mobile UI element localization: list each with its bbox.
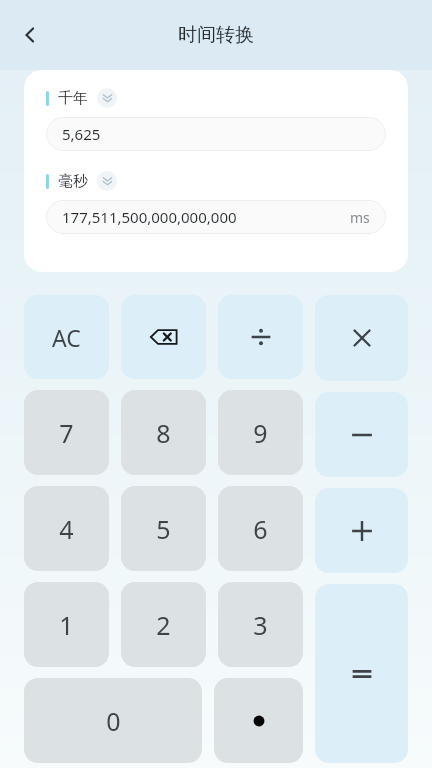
button[interactable]: Equals — [315, 584, 408, 763]
staticText: 6 — [253, 512, 268, 546]
staticText: 4 — [59, 512, 74, 546]
button[interactable]: Minus — [315, 392, 408, 477]
button[interactable]: 6 — [218, 486, 303, 571]
staticText: 5,625 — [62, 124, 370, 144]
staticText: 2 — [156, 608, 171, 642]
button[interactable]: 7 — [24, 390, 109, 475]
staticText: 1 — [59, 608, 74, 642]
button[interactable]: Multiply — [315, 295, 408, 381]
button[interactable]: Divide — [218, 295, 303, 379]
button[interactable]: 8 — [121, 390, 206, 475]
button[interactable]: Plus — [315, 488, 408, 573]
staticText: 8 — [156, 416, 171, 450]
staticText: AC — [52, 322, 81, 353]
staticText: ms — [350, 208, 370, 227]
staticText: 千年 — [58, 89, 88, 108]
staticText: 5 — [156, 512, 171, 546]
button[interactable]: All clear — [24, 295, 109, 379]
button[interactable]: 5,625 — [46, 117, 386, 151]
staticText: 177,511,500,000,000,000 — [62, 207, 350, 227]
button[interactable]: Change unit — [97, 88, 117, 108]
button[interactable]: 0 — [24, 678, 202, 763]
button[interactable]: 3 — [218, 582, 303, 667]
button[interactable]: 1 — [24, 582, 109, 667]
button[interactable]: 177,511,500,000,000,000 — [46, 200, 386, 234]
button[interactable]: 9 — [218, 390, 303, 475]
staticText: 3 — [253, 608, 268, 642]
button[interactable]: Back — [8, 13, 52, 57]
button[interactable]: 2 — [121, 582, 206, 667]
button[interactable]: 4 — [24, 486, 109, 571]
staticText: 9 — [253, 416, 268, 450]
button[interactable]: 5 — [121, 486, 206, 571]
staticText: 7 — [59, 416, 74, 450]
button[interactable]: Backspace — [121, 295, 206, 379]
button[interactable]: Decimal point — [214, 678, 303, 763]
staticText: 毫秒 — [58, 172, 88, 191]
button[interactable]: Change unit — [97, 171, 117, 191]
staticText: 0 — [106, 704, 121, 738]
staticText: 时间转换 — [178, 23, 254, 47]
